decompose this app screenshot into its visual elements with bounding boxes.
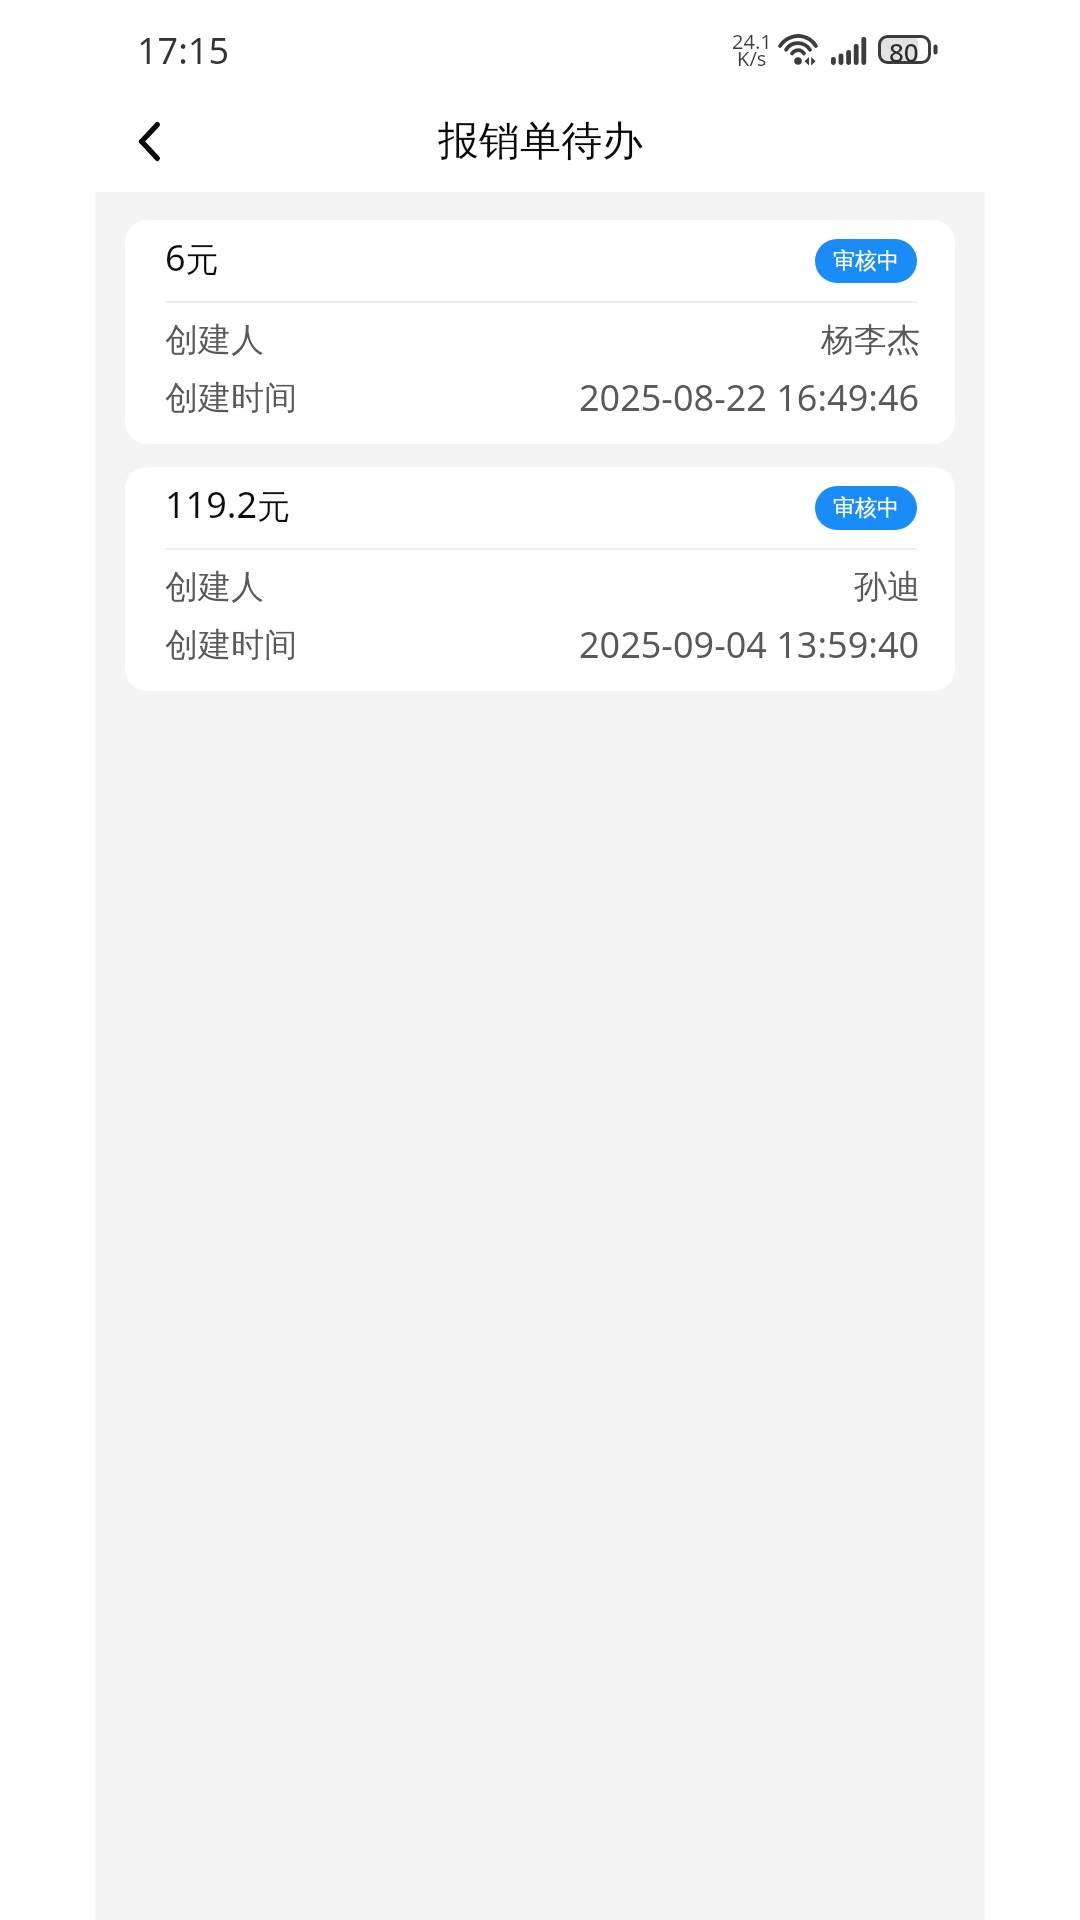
staticText: 2025-09-04 13:59:40	[579, 620, 920, 669]
staticText: 6元	[165, 233, 219, 282]
staticText: 24.1	[732, 28, 772, 55]
staticText: 2025-08-22 16:49:46	[579, 373, 920, 422]
staticText: 杨李杰	[821, 319, 920, 361]
button[interactable]: 6元	[125, 220, 955, 444]
button[interactable]: 119.2元	[125, 467, 955, 691]
staticText: 创建时间	[165, 377, 297, 419]
staticText: K/s	[737, 45, 767, 72]
staticText: 审核中	[833, 247, 899, 275]
staticText: 17:15	[137, 26, 230, 75]
button[interactable]: 审核中	[815, 486, 917, 530]
button[interactable]: 返回	[109, 101, 189, 181]
staticText: 审核中	[833, 494, 899, 522]
staticText: 80	[889, 34, 919, 65]
staticText: 创建人	[165, 319, 264, 361]
staticText: 创建时间	[165, 624, 297, 666]
staticText: 创建人	[165, 566, 264, 608]
staticText: 119.2元	[165, 480, 291, 529]
button[interactable]: 审核中	[815, 239, 917, 283]
staticText: 孙迪	[854, 566, 920, 608]
staticText: 报销单待办	[438, 116, 643, 168]
